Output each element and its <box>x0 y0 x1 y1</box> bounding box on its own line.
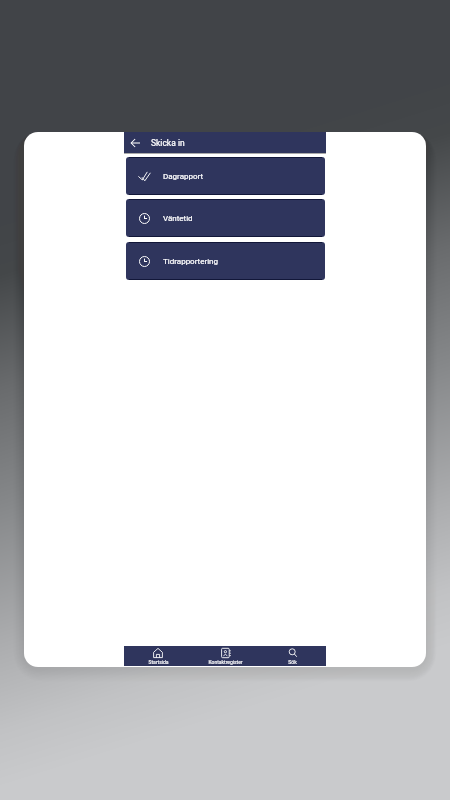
button[interactable]: Tidrapportering <box>126 242 325 280</box>
button[interactable]: Kontaktregister <box>192 646 259 666</box>
staticText: Skicka in <box>151 138 185 148</box>
button[interactable]: Dagrapport <box>126 157 325 195</box>
button[interactable]: Startsida <box>124 646 192 666</box>
staticText: Dagrapport <box>163 172 204 181</box>
staticText: Väntetid <box>163 214 193 223</box>
staticText: Startsida <box>148 659 169 665</box>
staticText: Sök <box>288 659 297 665</box>
button[interactable]: Back <box>124 132 326 153</box>
button[interactable]: Sök <box>259 646 326 666</box>
staticText: Tidrapportering <box>163 257 219 266</box>
button[interactable]: Väntetid <box>126 199 325 237</box>
staticText: Kontaktregister <box>208 659 243 665</box>
button[interactable]: Back <box>130 137 141 148</box>
